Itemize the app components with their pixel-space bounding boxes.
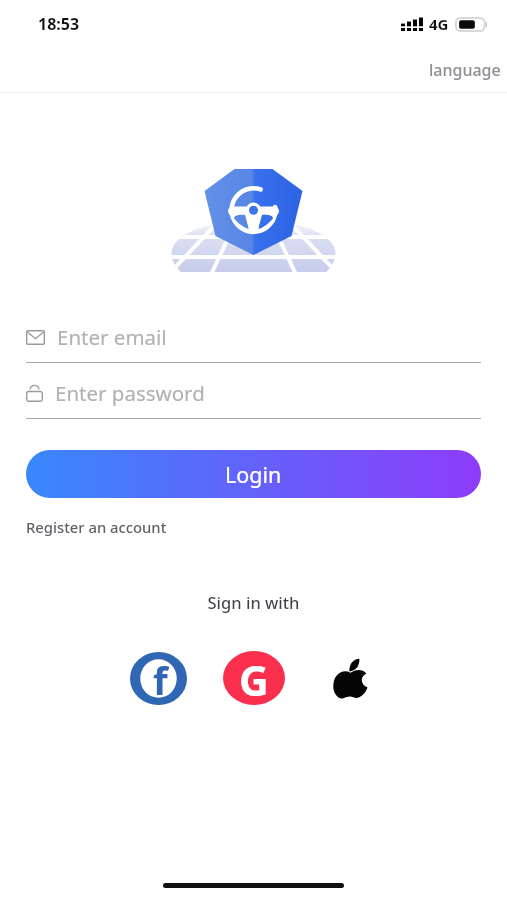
button[interactable]: Sign in with Google <box>223 647 285 709</box>
button[interactable]: Login <box>26 450 481 498</box>
staticText: Sign in with <box>0 591 507 613</box>
staticText: Register an account <box>26 517 167 537</box>
button[interactable]: Register an account <box>26 517 167 537</box>
staticText: Enter password <box>55 379 205 407</box>
staticText: 18:53 <box>38 13 80 35</box>
staticText: 4G <box>429 14 449 34</box>
button[interactable]: Sign in with Facebook <box>127 647 189 709</box>
staticText: Login <box>225 460 282 489</box>
button[interactable]: Sign in with Apple <box>319 647 381 709</box>
staticText: Enter email <box>57 323 167 351</box>
staticText: G <box>239 652 269 706</box>
staticText: f <box>153 654 168 706</box>
button[interactable]: language <box>429 59 507 81</box>
